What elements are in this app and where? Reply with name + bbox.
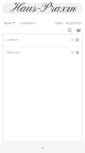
button[interactable]: MENU xyxy=(4,22,15,25)
staticText: LATEST xyxy=(6,38,18,42)
button[interactable]: LATEST xyxy=(6,38,18,42)
button[interactable]: SPECIALS xyxy=(6,51,21,54)
button[interactable]: CURRENCY xyxy=(20,22,36,25)
button[interactable]: List view xyxy=(76,38,79,42)
staticText: CURRENCY xyxy=(20,22,36,25)
button[interactable]: Search xyxy=(67,27,72,32)
button[interactable]: Cart xyxy=(76,27,81,32)
staticText: REGISTER xyxy=(66,22,81,25)
button[interactable]: LOGIN xyxy=(55,22,63,25)
button[interactable]: Grid view xyxy=(71,38,74,42)
staticText: Haus-Praxm xyxy=(9,0,75,17)
staticText: SPECIALS xyxy=(6,51,21,54)
staticText: MENU xyxy=(4,22,12,25)
button[interactable]: REGISTER xyxy=(66,22,81,25)
staticText: LOGIN xyxy=(55,22,63,25)
